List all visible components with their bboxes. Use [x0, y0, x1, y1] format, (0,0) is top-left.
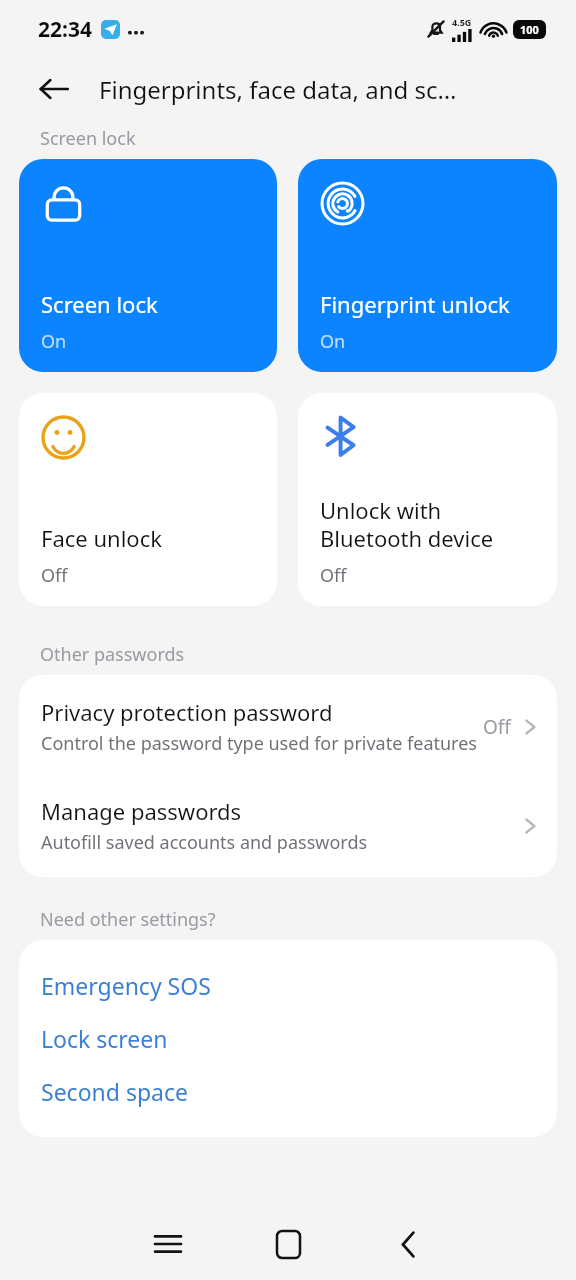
- button[interactable]: Recent apps: [108, 1214, 228, 1274]
- button[interactable]: Home: [228, 1214, 348, 1274]
- staticText: Need other settings?: [40, 907, 216, 932]
- staticText: Screen lock: [41, 289, 158, 319]
- staticText: Off: [41, 563, 68, 588]
- button[interactable]: Fingerprint unlock: [298, 159, 557, 372]
- staticText: Manage passwords: [41, 796, 242, 826]
- staticText: Off: [320, 563, 347, 588]
- button[interactable]: Back: [28, 63, 80, 115]
- staticText: Off: [483, 714, 511, 740]
- staticText: Face unlock: [41, 523, 162, 553]
- button[interactable]: Unlock with Bluetooth device: [298, 393, 557, 606]
- staticText: 22:34: [38, 15, 92, 44]
- staticText: On: [41, 329, 67, 354]
- button[interactable]: Lock screen: [19, 1001, 557, 1054]
- button[interactable]: Face unlock: [19, 393, 277, 606]
- button[interactable]: Screen lock: [19, 159, 277, 372]
- staticText: Other passwords: [40, 642, 185, 667]
- button[interactable]: Manage passwords: [19, 778, 557, 877]
- staticText: Screen lock: [40, 126, 136, 151]
- staticText: On: [320, 329, 346, 354]
- staticText: 4.5G: [452, 16, 472, 28]
- staticText: Second space: [41, 1076, 188, 1107]
- button[interactable]: Emergency SOS: [19, 940, 557, 1001]
- button[interactable]: Privacy protection password: [19, 675, 557, 778]
- staticText: Fingerprint unlock: [320, 289, 510, 319]
- staticText: Autofill saved accounts and passwords: [41, 830, 368, 855]
- staticText: Emergency SOS: [41, 970, 211, 1001]
- staticText: Privacy protection password: [41, 697, 333, 727]
- staticText: Fingerprints, face data, and sc…: [99, 73, 457, 106]
- staticText: 100: [520, 22, 539, 37]
- staticText: Control the password type used for priva…: [41, 731, 477, 756]
- button[interactable]: Second space: [19, 1054, 557, 1107]
- button[interactable]: Back: [348, 1214, 468, 1274]
- staticText: Lock screen: [41, 1023, 168, 1054]
- staticText: Unlock with Bluetooth device: [320, 495, 494, 553]
